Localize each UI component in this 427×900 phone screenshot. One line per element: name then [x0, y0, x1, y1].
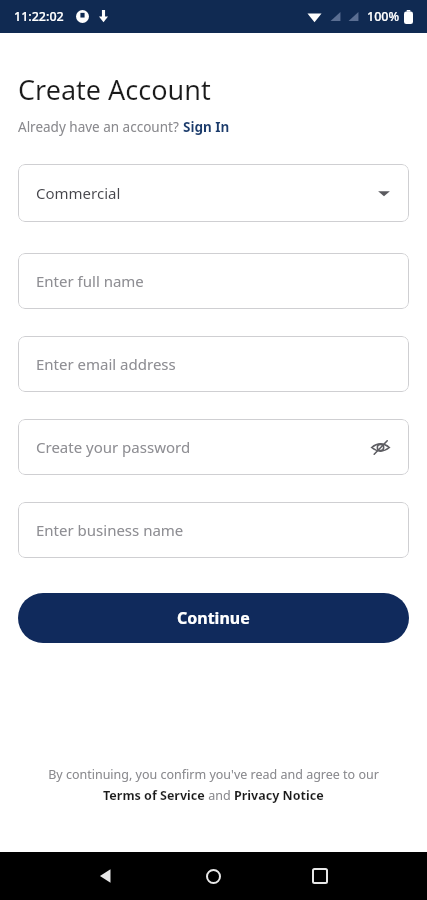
- staticText: Enter email address: [36, 354, 393, 374]
- staticText: Create Account: [18, 71, 211, 108]
- staticText: and: [205, 787, 234, 804]
- staticText: Already have an account?: [18, 118, 183, 136]
- button[interactable]: Show password: [367, 434, 393, 460]
- button[interactable]: Back: [84, 854, 128, 898]
- staticText: By continuing, you confirm you've read a…: [48, 766, 379, 783]
- button[interactable]: Sign In: [183, 118, 230, 136]
- staticText: 11:22:02: [14, 8, 64, 25]
- button[interactable]: Recent apps: [298, 854, 342, 898]
- button[interactable]: Create your password: [18, 419, 409, 475]
- staticText: Enter business name: [36, 520, 393, 540]
- button[interactable]: Privacy Notice: [234, 787, 324, 804]
- staticText: Commercial: [36, 183, 377, 203]
- button[interactable]: Commercial: [18, 164, 409, 222]
- staticText: Continue: [177, 607, 250, 629]
- staticText: Enter full name: [36, 271, 393, 291]
- staticText: 100%: [367, 8, 400, 25]
- button[interactable]: Enter business name: [18, 502, 409, 558]
- button[interactable]: Home: [191, 854, 235, 898]
- button[interactable]: Terms of Service: [103, 787, 205, 804]
- staticText: Create your password: [36, 437, 367, 457]
- button[interactable]: Continue: [18, 593, 409, 643]
- button[interactable]: Enter email address: [18, 336, 409, 392]
- button[interactable]: Enter full name: [18, 253, 409, 309]
